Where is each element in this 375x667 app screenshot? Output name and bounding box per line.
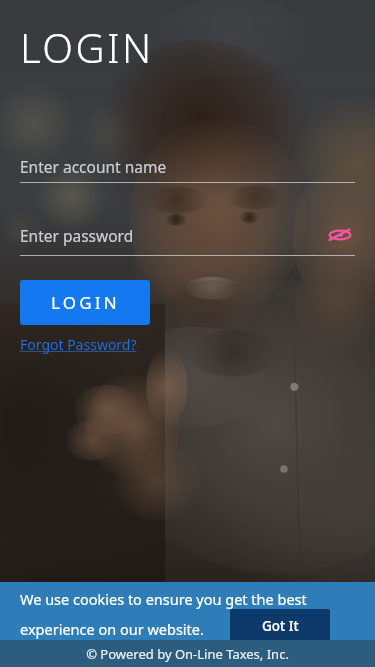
staticText: We use cookies to ensure you get the bes…	[20, 589, 307, 609]
staticText: © Powered by On-Line Taxes, Inc.	[86, 645, 289, 663]
button[interactable]: Enter password	[20, 220, 355, 256]
staticText: LOGIN	[20, 20, 154, 74]
staticText: LOGIN	[51, 291, 120, 314]
button[interactable]: Enter account name	[20, 156, 355, 183]
button[interactable]: Got It	[230, 609, 330, 642]
staticText: Forgot Password?	[20, 335, 137, 354]
staticText: Enter password	[20, 225, 134, 246]
staticText: Got It	[262, 617, 299, 635]
staticText: experience on our website.	[20, 619, 204, 639]
button[interactable]: Show password	[325, 220, 355, 250]
staticText: Enter account name	[20, 156, 167, 177]
button[interactable]: LOGIN	[20, 280, 150, 325]
button[interactable]: Forgot Password?	[20, 335, 137, 354]
